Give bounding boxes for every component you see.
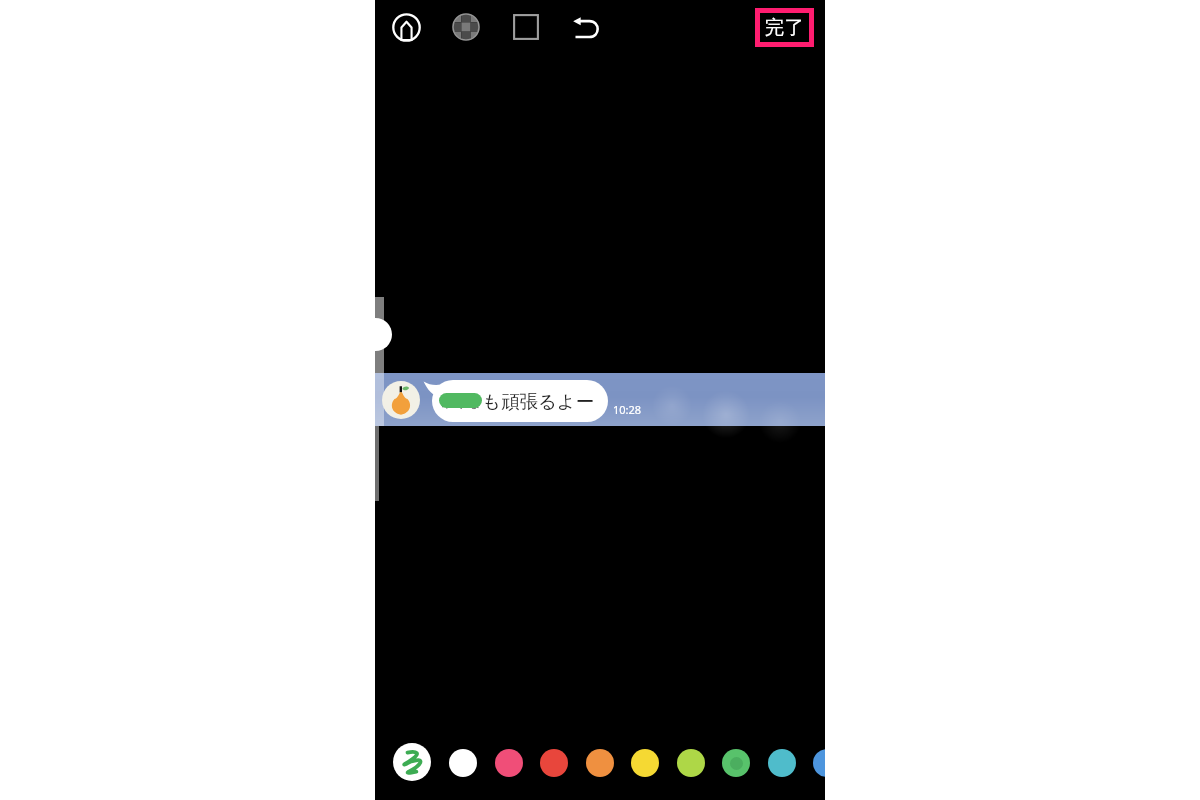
button[interactable]: Colour 8 bbox=[768, 749, 796, 777]
button[interactable]: Scroll handle bbox=[375, 318, 392, 351]
button[interactable]: Pen bbox=[386, 7, 426, 47]
staticText: 完了 bbox=[765, 15, 804, 40]
button[interactable]: Undo bbox=[566, 7, 606, 47]
button[interactable]: Colour 9 bbox=[813, 749, 825, 777]
button[interactable]: Current brush bbox=[393, 743, 431, 781]
button[interactable]: Colour 6 bbox=[677, 749, 705, 777]
button[interactable]: Opacity bbox=[446, 7, 486, 47]
button[interactable]: Colour 3 bbox=[540, 749, 568, 777]
button[interactable]: Colour 1 bbox=[449, 749, 477, 777]
staticText: 10:28 bbox=[613, 402, 642, 417]
button[interactable]: Shape bbox=[506, 7, 546, 47]
button[interactable]: Colour 7 bbox=[722, 749, 750, 777]
button[interactable]: Colour 5 bbox=[631, 749, 659, 777]
button[interactable]: 完了 bbox=[755, 8, 814, 47]
button[interactable]: Colour 4 bbox=[586, 749, 614, 777]
button[interactable]: Colour 2 bbox=[495, 749, 523, 777]
staticText: ゆりな bbox=[441, 394, 481, 410]
staticText: も頑張るよー bbox=[482, 390, 595, 413]
